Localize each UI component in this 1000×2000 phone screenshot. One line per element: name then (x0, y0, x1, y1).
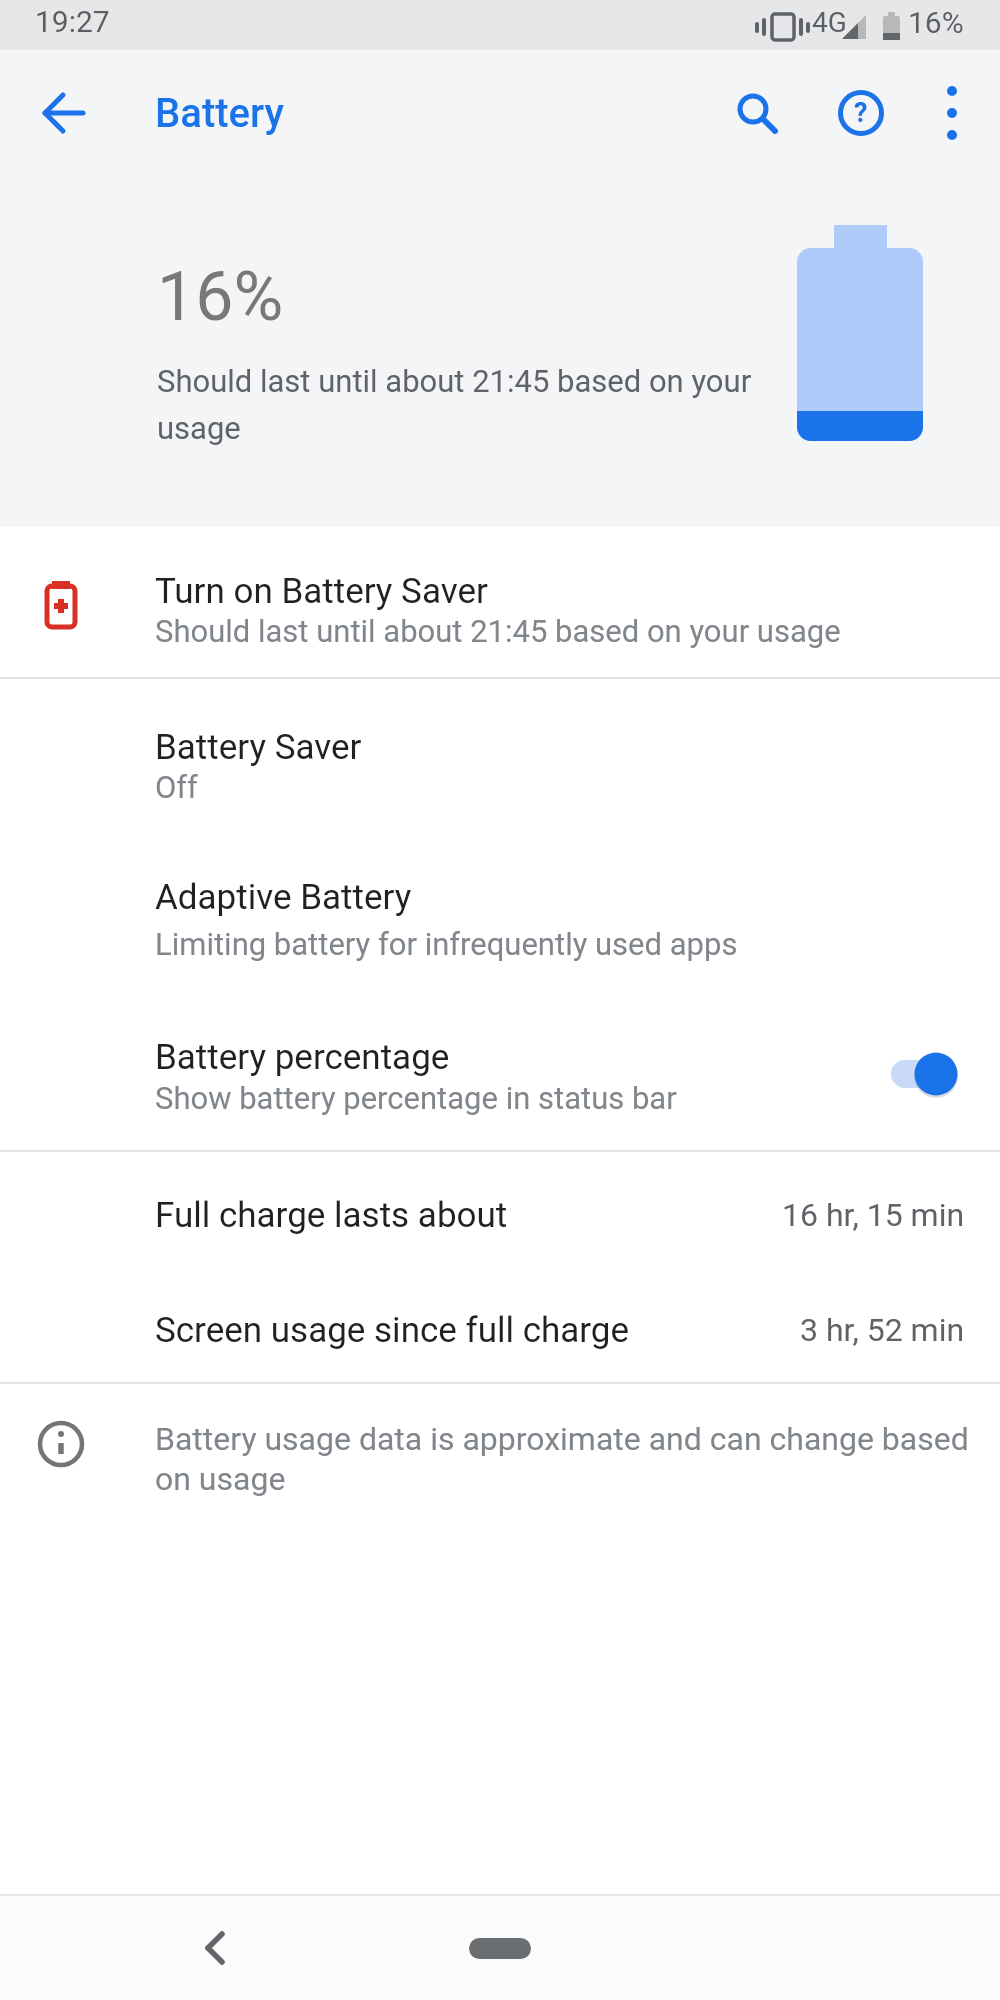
staticText: Battery Saver (155, 727, 362, 768)
button[interactable] (722, 78, 792, 148)
button[interactable]: ? (826, 78, 896, 148)
staticText: Battery (155, 90, 284, 137)
staticText: Should last until about 21:45 based on y… (157, 363, 752, 447)
button[interactable]: Battery Saver (0, 679, 1000, 828)
staticText: ? (854, 97, 868, 129)
staticText: Off (155, 769, 198, 805)
staticText: Show battery percentage in status bar (155, 1080, 677, 1116)
staticText: 3 hr, 52 min (800, 1311, 965, 1349)
staticText: 19:27 (35, 4, 110, 39)
staticText: 4G (812, 6, 847, 39)
button[interactable] (469, 1938, 531, 1959)
staticText: 16% (157, 257, 284, 337)
staticText: Battery usage data is approximate and ca… (155, 1420, 969, 1497)
button[interactable] (25, 75, 101, 151)
staticText: 16 hr, 15 min (782, 1196, 965, 1234)
staticText: Battery percentage (155, 1037, 450, 1078)
button[interactable]: Turn on Battery Saver (0, 527, 1000, 677)
staticText: Turn on Battery Saver (155, 571, 488, 612)
staticText: Limiting battery for infrequently used a… (155, 926, 738, 962)
staticText: Should last until about 21:45 based on y… (155, 613, 841, 649)
button[interactable] (922, 78, 982, 138)
button[interactable]: Screen usage since full charge (0, 1270, 1000, 1382)
button[interactable]: Full charge lasts about (0, 1152, 1000, 1270)
button[interactable]: Adaptive Battery (0, 828, 1000, 988)
staticText: 16% (908, 5, 964, 40)
button[interactable] (880, 1044, 960, 1104)
button[interactable] (180, 1916, 244, 1980)
staticText: Full charge lasts about (155, 1195, 508, 1236)
button[interactable]: Battery percentage (0, 988, 1000, 1150)
staticText: Screen usage since full charge (155, 1310, 630, 1351)
staticText: Adaptive Battery (155, 877, 412, 918)
